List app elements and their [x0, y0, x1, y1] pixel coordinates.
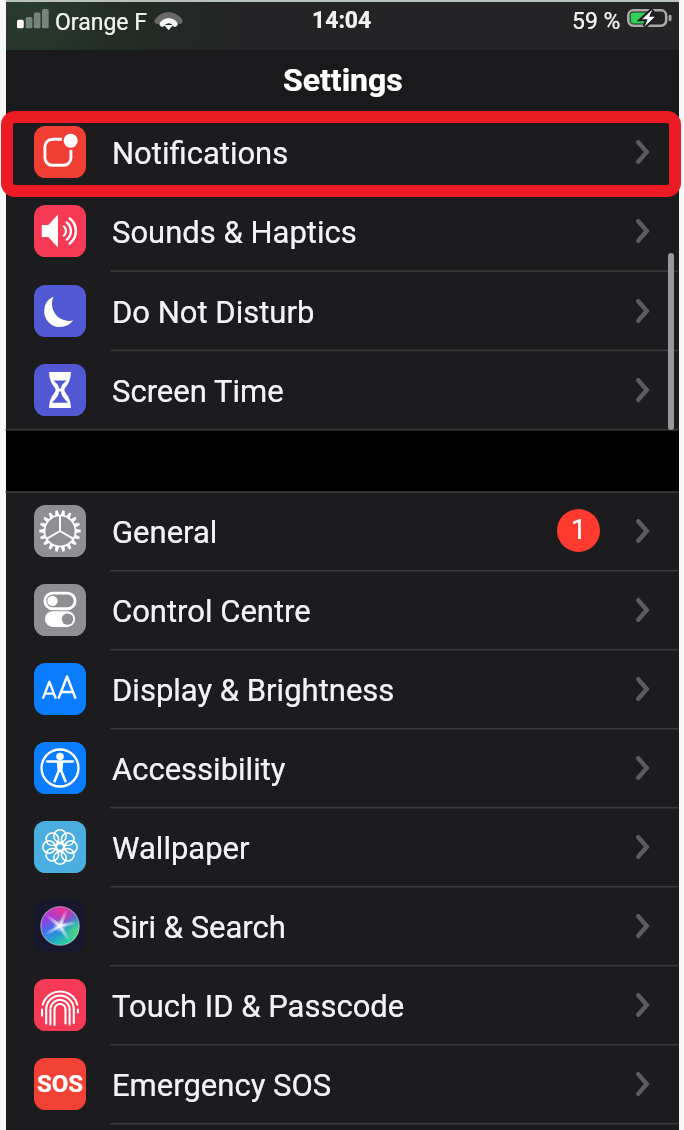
- staticText: SOS: [37, 1070, 84, 1098]
- staticText: Screen Time: [112, 373, 284, 409]
- staticText: Accessibility: [112, 751, 286, 787]
- staticText: 14:04: [312, 7, 372, 34]
- staticText: Control Centre: [112, 593, 311, 629]
- button[interactable]: Accessibility: [6, 728, 679, 807]
- staticText: Display & Brightness: [112, 672, 395, 708]
- staticText: Do Not Disturb: [112, 294, 315, 330]
- staticText: Wallpaper: [112, 830, 250, 866]
- staticText: Siri & Search: [112, 909, 286, 945]
- staticText: Sounds & Haptics: [112, 214, 357, 250]
- staticText: Touch ID & Passcode: [112, 988, 405, 1024]
- staticText: Orange F: [55, 9, 147, 36]
- button[interactable]: SOS: [6, 1044, 679, 1123]
- button[interactable]: Touch ID & Passcode: [6, 965, 679, 1044]
- button[interactable]: Screen Time: [6, 350, 679, 429]
- button[interactable]: Display & Brightness: [6, 649, 679, 728]
- button[interactable]: Sounds & Haptics: [6, 191, 679, 270]
- staticText: General: [112, 514, 218, 550]
- button[interactable]: Wallpaper: [6, 807, 679, 886]
- staticText: 1: [571, 514, 587, 546]
- staticText: 59 %: [572, 8, 621, 35]
- staticText: Notifications: [112, 135, 289, 171]
- button[interactable]: General: [6, 491, 679, 570]
- button[interactable]: Notifications: [6, 112, 679, 191]
- staticText: Settings: [283, 61, 403, 99]
- button[interactable]: Control Centre: [6, 570, 679, 649]
- button[interactable]: Do Not Disturb: [6, 271, 679, 350]
- button[interactable]: Siri & Search: [6, 886, 679, 965]
- staticText: Emergency SOS: [112, 1067, 332, 1103]
